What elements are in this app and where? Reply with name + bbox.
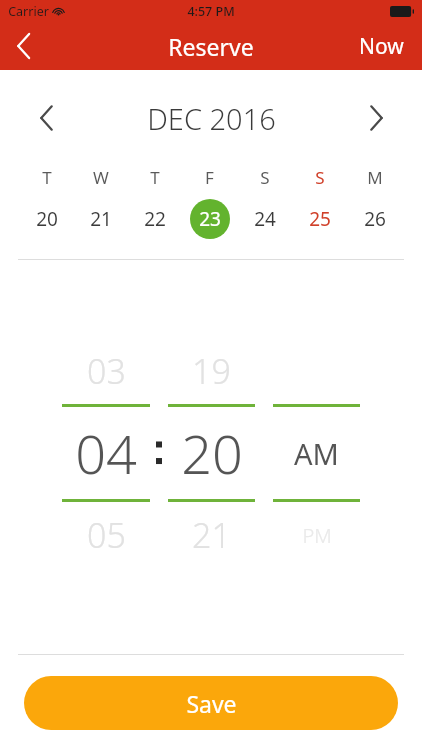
staticText: M [367, 166, 383, 189]
staticText: F [205, 166, 214, 189]
staticText: 19 [192, 348, 231, 394]
staticText: 21 [90, 206, 112, 232]
staticText: T [42, 166, 52, 189]
button[interactable]: 04 [62, 407, 150, 499]
button[interactable]: 05 [62, 512, 150, 558]
button[interactable]: 21 [168, 512, 255, 558]
staticText: W [93, 166, 109, 189]
staticText: 24 [254, 206, 276, 232]
button[interactable]: 25 [292, 197, 347, 241]
staticText: 20 [181, 416, 243, 490]
staticText: 4:57 PM [187, 3, 235, 20]
staticText: Save [186, 688, 237, 719]
staticText: 22 [144, 206, 166, 232]
staticText: 26 [364, 206, 386, 232]
button[interactable]: 24 [237, 197, 292, 241]
button[interactable]: 22 [128, 197, 182, 241]
button[interactable]: 20 [20, 197, 74, 241]
button[interactable]: Save [24, 676, 398, 730]
staticText: 20 [36, 206, 58, 232]
staticText: S [315, 166, 325, 189]
staticText: 25 [309, 206, 331, 232]
button[interactable]: 19 [168, 348, 255, 394]
button[interactable]: 26 [347, 197, 402, 241]
button[interactable]: PM [273, 522, 360, 549]
button[interactable]: 03 [62, 348, 150, 394]
button[interactable]: 20 [168, 407, 255, 499]
button[interactable]: AM [273, 407, 360, 499]
button[interactable]: Now [355, 24, 408, 69]
staticText: 04 [75, 416, 137, 490]
staticText: S [260, 166, 270, 189]
button[interactable]: Previous month [24, 96, 68, 140]
staticText: Reserve [168, 31, 254, 62]
button[interactable]: 21 [74, 197, 128, 241]
staticText: 03 [87, 348, 126, 394]
button[interactable]: 23 [182, 197, 237, 241]
staticText: 23 [199, 206, 221, 232]
button[interactable]: Next month [354, 96, 398, 140]
staticText: DEC 2016 [147, 99, 276, 138]
staticText: AM [294, 434, 339, 473]
staticText: T [150, 166, 160, 189]
staticText: Now [359, 32, 404, 61]
staticText: 21 [192, 512, 231, 558]
staticText: 05 [87, 512, 126, 558]
button[interactable]: Back [0, 22, 48, 70]
staticText: Carrier [8, 3, 49, 20]
staticText: PM [302, 522, 332, 549]
